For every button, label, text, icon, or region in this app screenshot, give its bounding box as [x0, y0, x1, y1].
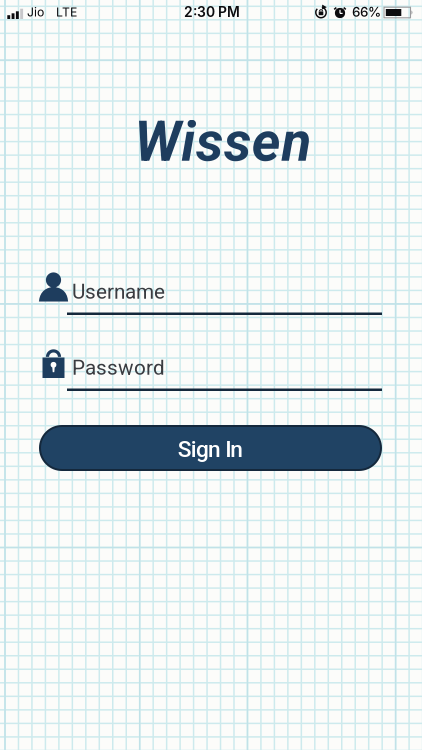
staticText: Password [72, 356, 165, 380]
staticText: 2:30 PM [184, 4, 240, 20]
staticText: 66% [352, 4, 381, 20]
staticText: LTE [56, 5, 77, 19]
staticText: Sign In [178, 436, 243, 462]
staticText: Wissen [134, 110, 311, 174]
button[interactable]: Password [36, 346, 382, 392]
staticText: Username [72, 280, 165, 304]
staticText: Jio [27, 5, 44, 19]
button[interactable]: Sign In [40, 426, 381, 470]
button[interactable]: Username [36, 270, 382, 316]
